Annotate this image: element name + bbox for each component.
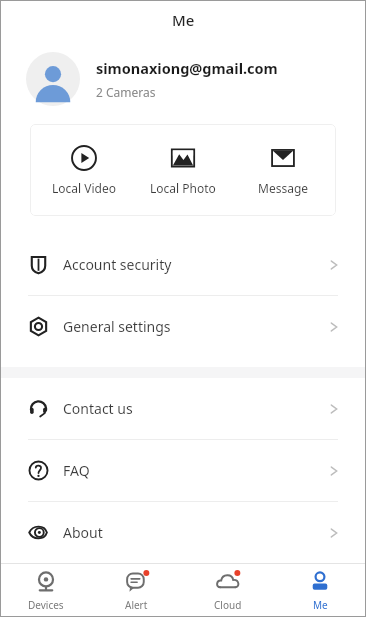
staticText: About (63, 523, 328, 542)
button[interactable]: General settings (0, 296, 366, 357)
staticText: Me (313, 598, 328, 612)
staticText: Me (172, 10, 195, 30)
staticText: Account security (63, 255, 328, 274)
button[interactable]: Devices (0, 564, 91, 617)
staticText: Devices (28, 598, 64, 612)
staticText: Cloud (214, 598, 242, 612)
button[interactable]: Message (237, 139, 329, 202)
staticText: Alert (125, 598, 148, 612)
button[interactable]: Local Video (38, 139, 130, 202)
staticText: Contact us (63, 399, 328, 418)
button[interactable]: FAQ (0, 440, 366, 501)
button[interactable]: Account security (0, 234, 366, 295)
button[interactable]: Me (274, 564, 366, 617)
button[interactable]: Alert (91, 564, 182, 617)
staticText: 2 Cameras (96, 84, 156, 100)
staticText: simonaxiong@gmail.com (96, 58, 278, 78)
button[interactable]: Cloud (182, 564, 274, 617)
button[interactable]: Contact us (0, 378, 366, 439)
staticText: Message (258, 180, 309, 196)
button[interactable]: Local Photo (137, 139, 229, 202)
staticText: FAQ (63, 461, 328, 480)
button[interactable]: About (0, 502, 366, 563)
staticText: Local Video (52, 180, 116, 196)
staticText: General settings (63, 317, 328, 336)
staticText: Local Photo (150, 180, 216, 196)
button[interactable]: simonaxiong@gmail.com (0, 40, 366, 118)
